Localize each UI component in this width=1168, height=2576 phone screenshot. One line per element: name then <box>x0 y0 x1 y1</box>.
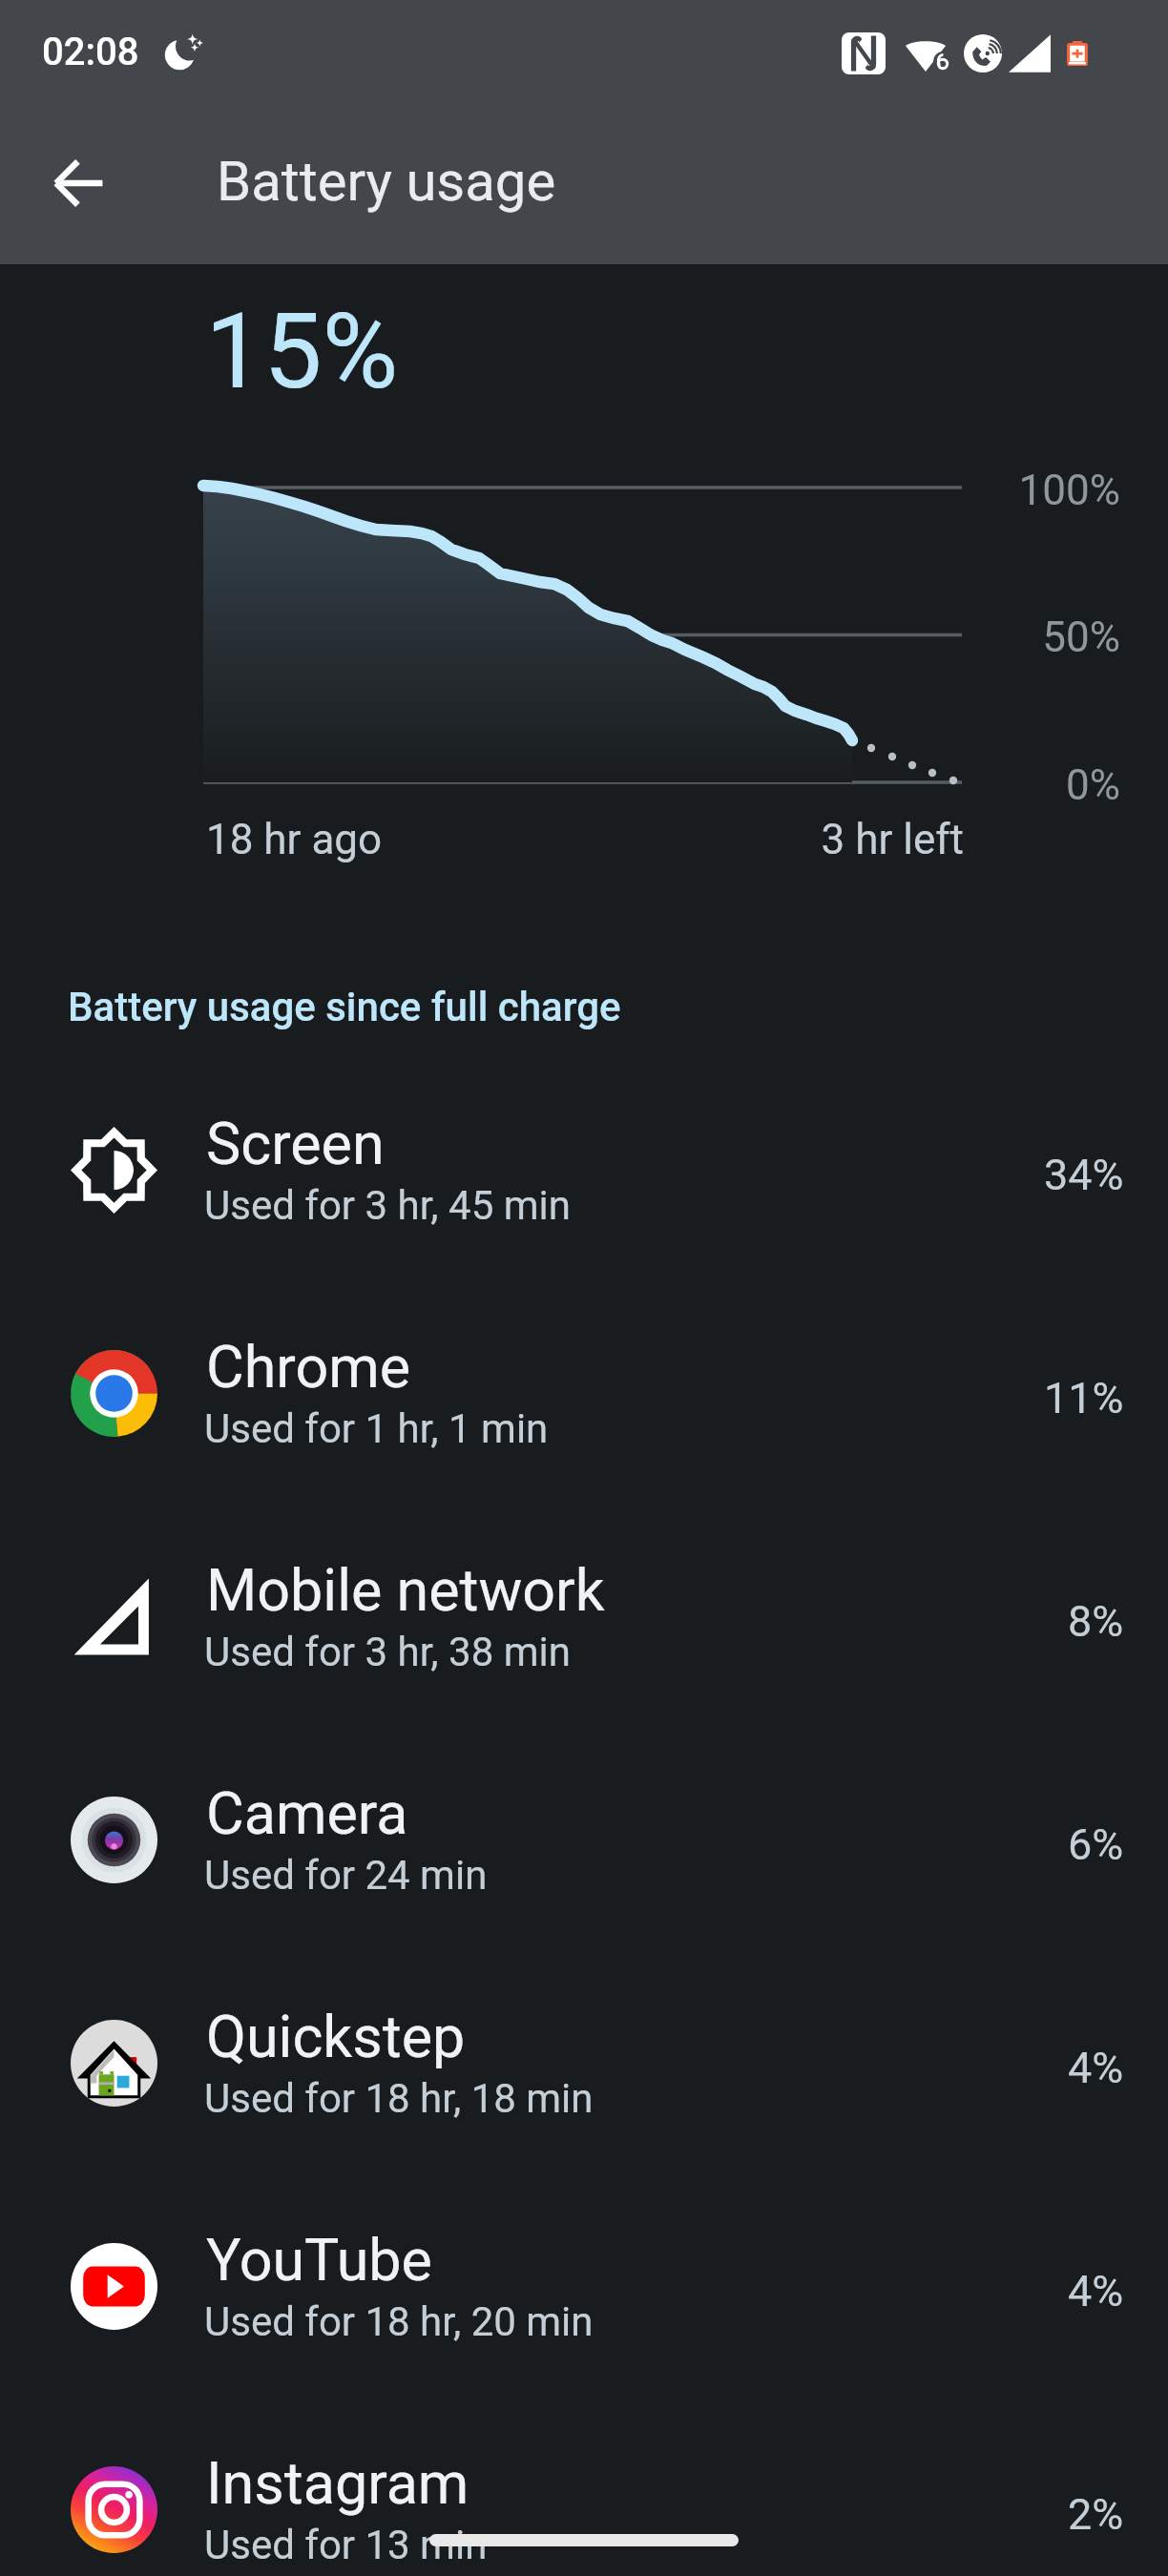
staticText: Battery usage since full charge <box>68 984 621 1030</box>
staticText: Chrome <box>206 1333 411 1401</box>
staticText: Used for 3 hr, 45 min <box>204 1182 571 1229</box>
button[interactable]: Camera <box>0 1726 1168 1949</box>
staticText: 6% <box>1068 1819 1124 1870</box>
button[interactable]: Chrome <box>0 1279 1168 1503</box>
staticText: 02:08 <box>42 30 139 74</box>
staticText: Used for 18 hr, 18 min <box>204 2075 594 2122</box>
staticText: 8% <box>1068 1596 1124 1647</box>
staticText: Camera <box>206 1779 408 1847</box>
button[interactable]: Screen <box>0 1056 1168 1279</box>
button[interactable]: Quickstep <box>0 1949 1168 2172</box>
staticText: Used for 18 hr, 20 min <box>204 2298 594 2345</box>
staticText: 3 hr left <box>687 815 964 864</box>
staticText: 15% <box>205 291 399 413</box>
staticText: 2% <box>1068 2489 1124 2540</box>
staticText: Instagram <box>206 2449 469 2517</box>
staticText: Screen <box>206 1110 385 1177</box>
staticText: Mobile network <box>206 1556 605 1624</box>
staticText: 4% <box>1068 2043 1124 2093</box>
staticText: 18 hr ago <box>206 815 383 864</box>
staticText: Battery usage <box>217 149 556 214</box>
staticText: Quickstep <box>206 2003 466 2070</box>
staticText: Used for 13 min <box>204 2522 488 2568</box>
staticText: YouTube <box>206 2226 432 2294</box>
staticText: 34% <box>1044 1150 1124 1200</box>
button[interactable]: YouTube <box>0 2172 1168 2396</box>
button[interactable]: Back <box>33 137 125 229</box>
staticText: 11% <box>1044 1373 1124 1423</box>
staticText: 4% <box>1068 2266 1124 2316</box>
staticText: 50% <box>977 613 1120 662</box>
staticText: Used for 1 hr, 1 min <box>204 1405 549 1452</box>
staticText: 0% <box>977 760 1120 810</box>
button[interactable]: Instagram <box>0 2396 1168 2576</box>
staticText: Used for 24 min <box>204 1852 488 1899</box>
button[interactable]: Mobile network <box>0 1503 1168 1726</box>
staticText: Used for 3 hr, 38 min <box>204 1629 571 1675</box>
staticText: 100% <box>977 466 1120 515</box>
